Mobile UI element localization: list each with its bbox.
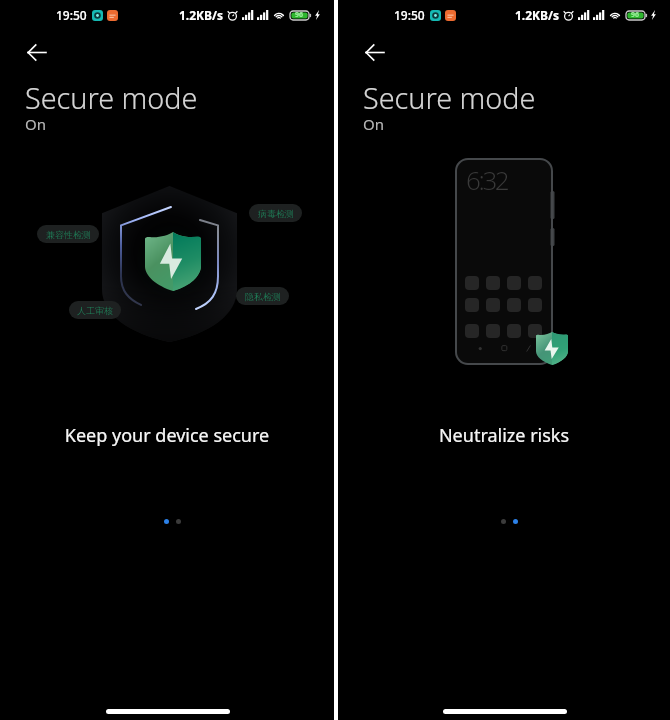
staticText: 19:50	[56, 7, 87, 23]
staticText: 兼容性检测	[46, 229, 91, 240]
staticText: Neutralize risks	[338, 423, 670, 448]
button[interactable]: Back	[358, 36, 390, 68]
staticText: 人工审核	[77, 305, 113, 316]
staticText: 1.2KB/s	[179, 7, 224, 23]
staticText: On	[363, 114, 384, 134]
staticText: 隐私检测	[245, 291, 281, 302]
staticText: 19:50	[394, 7, 425, 23]
button[interactable]: Back	[20, 36, 52, 68]
staticText: 病毒检测	[258, 208, 294, 219]
staticText: Secure mode	[25, 78, 198, 117]
staticText: 96	[295, 10, 304, 20]
staticText: On	[25, 114, 46, 134]
staticText: Secure mode	[363, 78, 536, 117]
staticText: 96	[631, 10, 640, 20]
staticText: 1.2KB/s	[515, 7, 560, 23]
staticText: Keep your device secure	[0, 423, 334, 448]
staticText: 6:32	[466, 162, 508, 197]
